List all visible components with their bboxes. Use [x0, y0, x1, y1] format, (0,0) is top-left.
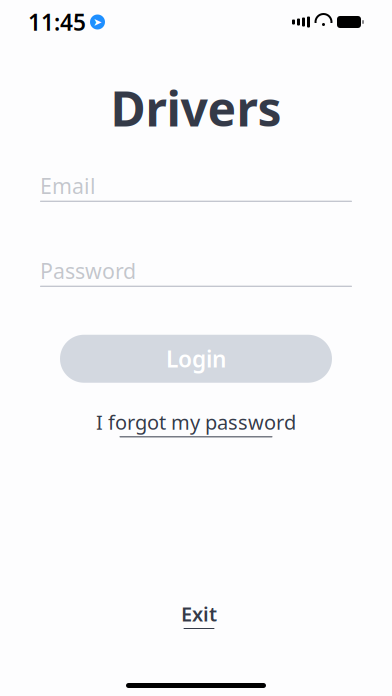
button[interactable]: Exit: [171, 594, 227, 635]
button[interactable]: Login: [60, 335, 332, 383]
button[interactable]: I forgot my password: [88, 403, 304, 443]
staticText: I forgot my password: [96, 409, 296, 435]
staticText: Drivers: [110, 76, 281, 140]
staticText: 11:45: [28, 7, 86, 37]
staticText: Exit: [181, 600, 217, 627]
staticText: ➤: [93, 16, 102, 28]
staticText: Email: [40, 172, 96, 200]
staticText: Password: [40, 257, 136, 285]
staticText: Login: [166, 344, 226, 374]
